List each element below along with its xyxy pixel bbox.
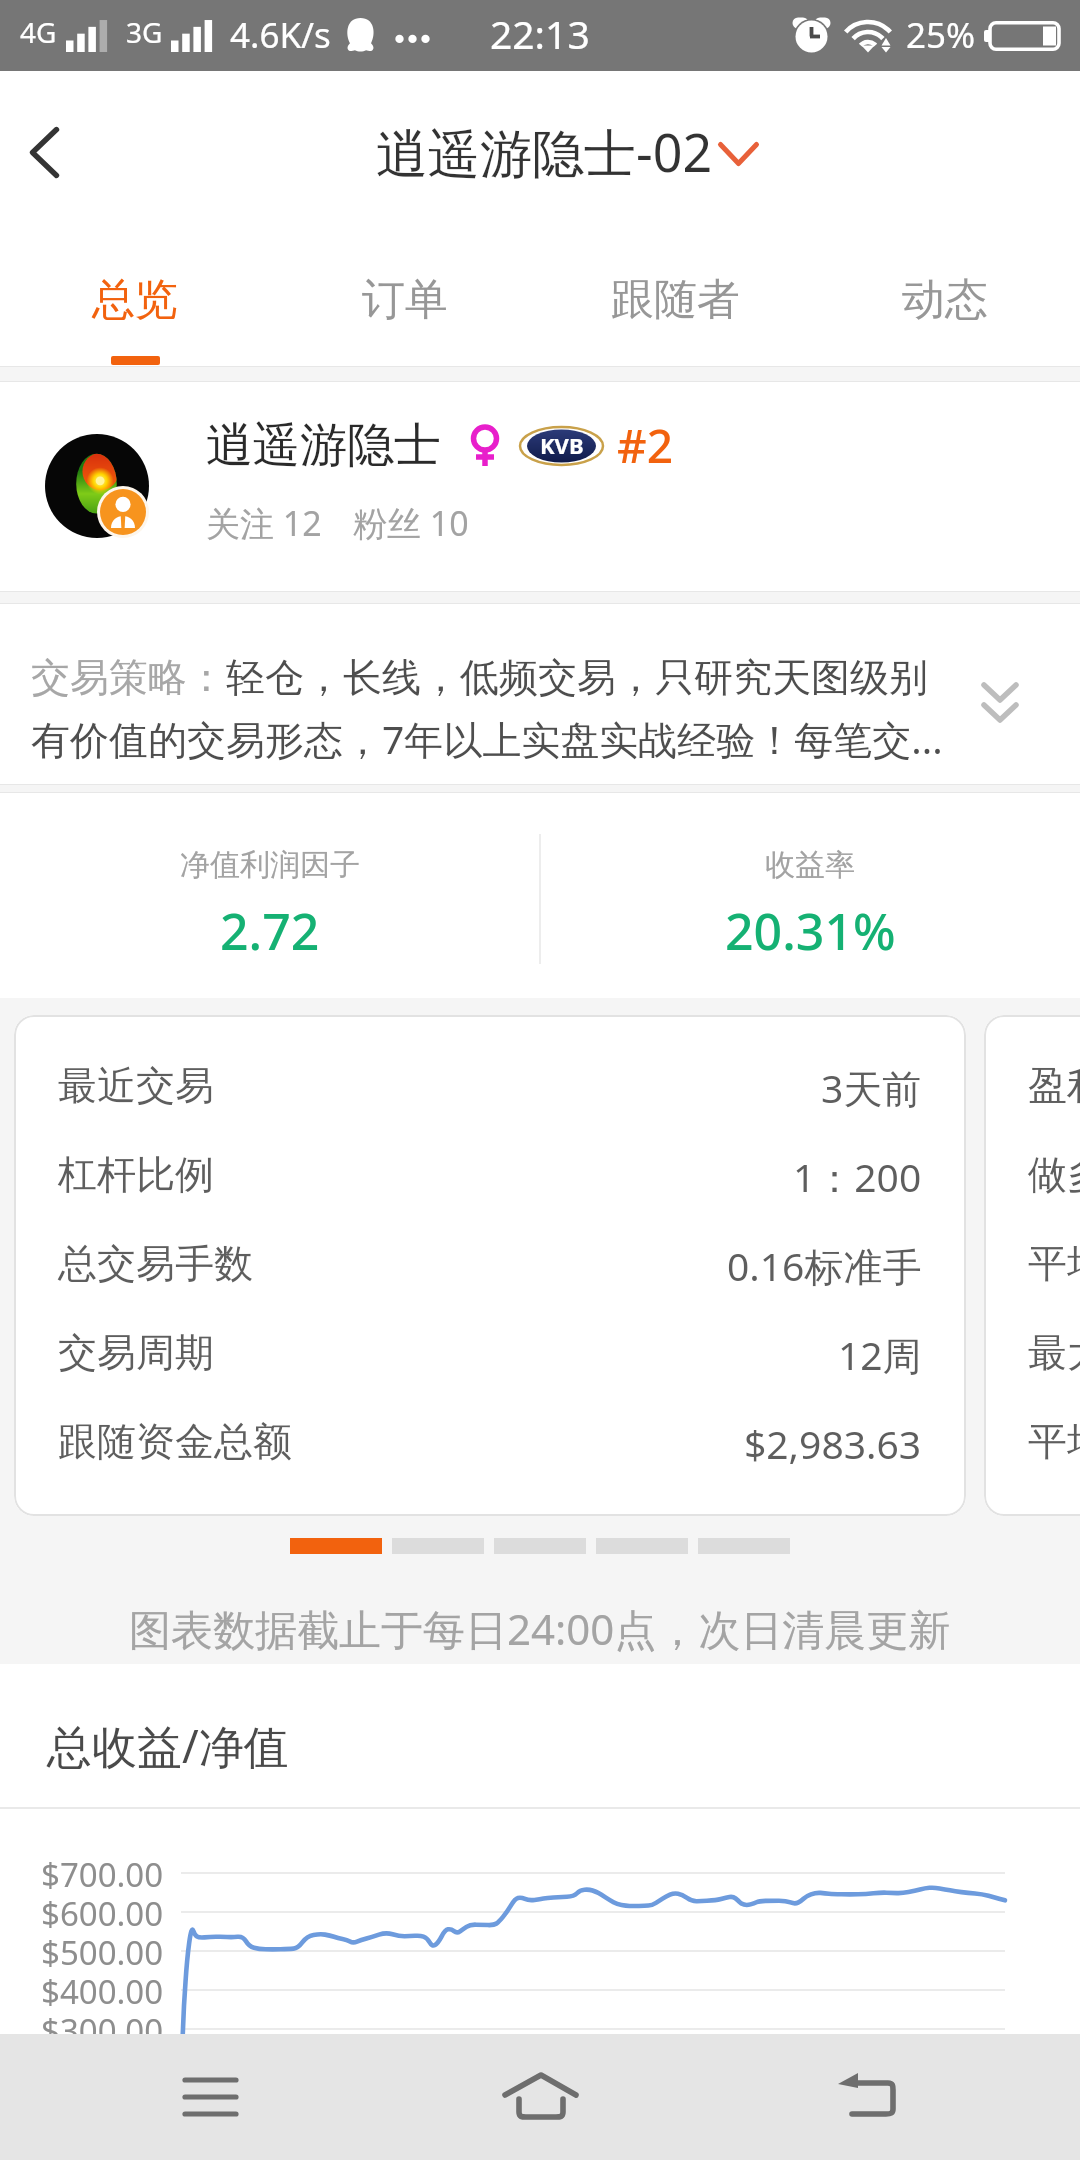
staticText: 22:13 bbox=[490, 7, 590, 60]
staticText: 25% bbox=[906, 11, 976, 59]
button[interactable]: 订单 bbox=[270, 233, 540, 366]
staticText: 0.16标准手 bbox=[727, 1239, 922, 1292]
staticText: 4G bbox=[20, 13, 57, 51]
staticText: $500.00 bbox=[41, 1930, 164, 1975]
staticText: $400.00 bbox=[41, 1969, 164, 2014]
staticText: 杠杆比例 bbox=[58, 1150, 214, 1199]
staticText: 订单 bbox=[362, 273, 448, 327]
button[interactable]: 跟随者 bbox=[540, 233, 810, 366]
staticText: 总交易手数 bbox=[58, 1239, 253, 1288]
staticText: 跟随者 bbox=[611, 273, 740, 327]
staticText: 交易周期 bbox=[58, 1328, 214, 1377]
staticText: 4.6K/s bbox=[230, 11, 331, 59]
staticText: $300.00 bbox=[41, 2008, 164, 2053]
staticText: 动态 bbox=[902, 273, 988, 327]
staticText: 做多 bbox=[1028, 1150, 1080, 1199]
button[interactable]: 最近交易 bbox=[14, 1015, 966, 1516]
button[interactable]: 动态 bbox=[810, 233, 1080, 366]
staticText: 逍遥游隐士 bbox=[206, 416, 441, 475]
staticText: 20.31% bbox=[725, 897, 896, 965]
staticText: KVB bbox=[540, 430, 584, 460]
button[interactable]: Home bbox=[490, 2060, 590, 2134]
staticText: 3G bbox=[126, 13, 163, 51]
staticText: 最近交易 bbox=[58, 1061, 214, 1110]
staticText: 图表数据截止于每日24:00点，次日清晨更新 bbox=[129, 1600, 951, 1657]
staticText: 关注 12 bbox=[206, 500, 322, 546]
staticText: 3天前 bbox=[821, 1061, 922, 1114]
staticText: 跟随资金总额 bbox=[58, 1417, 292, 1466]
staticText: 平均 bbox=[1028, 1417, 1080, 1466]
staticText: 收益率 bbox=[765, 846, 855, 884]
button[interactable]: 盈利 bbox=[984, 1015, 1080, 1516]
staticText: 2.72 bbox=[220, 897, 320, 965]
button[interactable]: 总览 bbox=[0, 233, 270, 366]
staticText: 总收益/净值 bbox=[47, 1715, 289, 1776]
button[interactable]: Recent apps bbox=[165, 2060, 257, 2134]
staticText: 盈利 bbox=[1028, 1061, 1080, 1110]
button[interactable]: 交易策略：轻仓，长线，低频交易，只研究天图级别 有价值的交易形态，7年以上实盘实… bbox=[0, 604, 1080, 784]
staticText: 粉丝 10 bbox=[353, 500, 469, 546]
button[interactable]: Back bbox=[0, 97, 99, 207]
staticText: 1：200 bbox=[793, 1150, 922, 1203]
staticText: 总览 bbox=[92, 273, 178, 327]
staticText: 逍遥游隐士-02 bbox=[376, 116, 713, 187]
staticText: 净值利润因子 bbox=[180, 846, 360, 884]
staticText: $2,983.63 bbox=[744, 1417, 922, 1470]
button[interactable]: 逍遥游隐士 bbox=[0, 382, 1080, 591]
staticText: #2 bbox=[617, 414, 674, 477]
button[interactable]: 逍遥游隐士-02 bbox=[376, 116, 713, 187]
staticText: 交易策略：轻仓，长线，低频交易，只研究天图级别 有价值的交易形态，7年以上实盘实… bbox=[31, 653, 961, 765]
button[interactable]: Back bbox=[820, 2060, 920, 2134]
staticText: 12周 bbox=[838, 1328, 922, 1381]
staticText: $600.00 bbox=[41, 1891, 164, 1936]
staticText: 平均 bbox=[1028, 1239, 1080, 1288]
staticText: $700.00 bbox=[41, 1852, 164, 1897]
staticText: 最大 bbox=[1028, 1328, 1080, 1377]
